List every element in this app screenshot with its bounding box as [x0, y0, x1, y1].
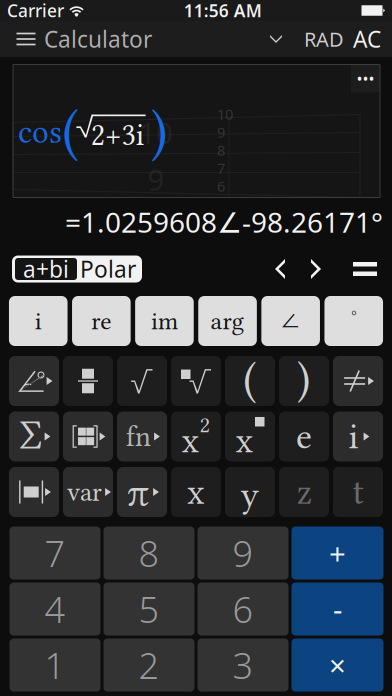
- button[interactable]: Squared: [171, 411, 221, 461]
- button[interactable]: Power: [225, 411, 275, 461]
- button[interactable]: Imaginary unit: [333, 411, 383, 461]
- staticText: 2: [138, 641, 159, 689]
- button[interactable]: arg: [198, 296, 257, 346]
- staticText: a+bi: [23, 254, 69, 284]
- staticText: 9: [232, 529, 253, 577]
- button[interactable]: Multiply: [291, 638, 383, 691]
- button[interactable]: x: [171, 467, 221, 517]
- staticText: •••: [356, 68, 374, 89]
- button[interactable]: ∠: [261, 296, 320, 346]
- button[interactable]: Previous: [264, 255, 296, 283]
- button[interactable]: 1: [9, 638, 100, 691]
- button[interactable]: Right parenthesis: [279, 356, 329, 406]
- staticText: °: [351, 306, 356, 328]
- button[interactable]: Display options: [351, 64, 380, 92]
- button[interactable]: 2: [103, 638, 194, 691]
- staticText: fn: [126, 420, 151, 453]
- staticText: var: [67, 477, 102, 507]
- staticText: z: [296, 471, 311, 512]
- button[interactable]: Nth root: [171, 356, 221, 406]
- staticText: 6: [232, 585, 253, 633]
- button[interactable]: z: [279, 467, 329, 517]
- staticText: 10: [139, 113, 173, 152]
- staticText: 11:56 AM: [184, 0, 262, 22]
- button[interactable]: im: [135, 296, 194, 346]
- button[interactable]: a+bi: [15, 258, 77, 280]
- button[interactable]: Angle mode: [9, 356, 59, 406]
- staticText: ×: [329, 645, 346, 684]
- staticText: cos: [18, 113, 62, 151]
- button[interactable]: Add: [291, 526, 383, 579]
- button[interactable]: Polar: [77, 258, 139, 280]
- staticText: Polar: [80, 254, 136, 284]
- button[interactable]: 6: [197, 582, 288, 635]
- staticText: AC: [353, 24, 381, 54]
- button[interactable]: 3: [197, 638, 288, 691]
- staticText: -: [333, 589, 342, 628]
- button[interactable]: re: [72, 296, 131, 346]
- button[interactable]: Summation: [9, 411, 59, 461]
- staticText: arg: [211, 307, 245, 335]
- button[interactable]: t: [333, 467, 383, 517]
- button[interactable]: °: [324, 296, 383, 346]
- staticText: y: [240, 474, 259, 515]
- staticText: 4: [44, 585, 65, 633]
- staticText: 3: [232, 641, 253, 689]
- button[interactable]: Variables: [63, 467, 113, 517]
- staticText: i: [349, 416, 359, 457]
- staticText: 5: [138, 585, 159, 633]
- button[interactable]: 5: [103, 582, 194, 635]
- button[interactable]: 8: [103, 526, 194, 579]
- staticText: t: [352, 471, 363, 512]
- button[interactable]: Subtract: [291, 582, 383, 635]
- staticText: ∠: [281, 305, 300, 337]
- button[interactable]: Next: [300, 255, 332, 283]
- staticText: 1: [44, 641, 65, 689]
- staticText: i: [35, 307, 42, 335]
- button[interactable]: RAD: [304, 21, 344, 57]
- staticText: 7: [217, 158, 225, 178]
- button[interactable]: 7: [9, 526, 100, 579]
- button[interactable]: History: [256, 21, 296, 57]
- button[interactable]: Constants: [117, 467, 167, 517]
- button[interactable]: Menu: [8, 21, 44, 57]
- staticText: π: [127, 470, 150, 516]
- staticText: RAD: [304, 26, 344, 52]
- staticText: re: [91, 307, 111, 335]
- staticText: 8: [217, 140, 225, 160]
- staticText: +: [329, 533, 346, 572]
- button[interactable]: e: [279, 411, 329, 461]
- staticText: Carrier: [7, 0, 64, 22]
- staticText: im: [151, 307, 178, 335]
- button[interactable]: All clear: [350, 21, 384, 57]
- staticText: 7: [44, 529, 65, 577]
- button[interactable]: Fraction: [63, 356, 113, 406]
- staticText: 2: [199, 412, 210, 438]
- button[interactable]: y: [225, 467, 275, 517]
- staticText: x: [235, 420, 253, 461]
- button[interactable]: Matrix: [63, 411, 113, 461]
- staticText: 9: [147, 160, 164, 199]
- button[interactable]: i: [9, 296, 67, 346]
- staticText: x: [181, 420, 199, 461]
- button[interactable]: 9: [197, 526, 288, 579]
- staticText: 2+3i: [91, 117, 144, 152]
- button[interactable]: 4: [9, 582, 100, 635]
- staticText: 9: [217, 122, 225, 142]
- button[interactable]: Evaluate: [346, 255, 384, 283]
- staticText: Σ: [20, 413, 43, 458]
- button[interactable]: Functions: [117, 411, 167, 461]
- staticText: e: [296, 416, 312, 457]
- button[interactable]: Square root: [117, 356, 167, 406]
- staticText: (: [62, 99, 79, 163]
- staticText: 8: [138, 529, 159, 577]
- staticText: 10: [217, 104, 233, 124]
- staticText: ): [297, 353, 311, 405]
- staticText: x: [187, 471, 205, 512]
- button[interactable]: Comparisons: [333, 356, 383, 406]
- button[interactable]: Absolute value: [9, 467, 59, 517]
- staticText: (: [243, 353, 257, 405]
- staticText: ): [151, 99, 168, 163]
- button[interactable]: Left parenthesis: [225, 356, 275, 406]
- staticText: 6: [217, 176, 225, 196]
